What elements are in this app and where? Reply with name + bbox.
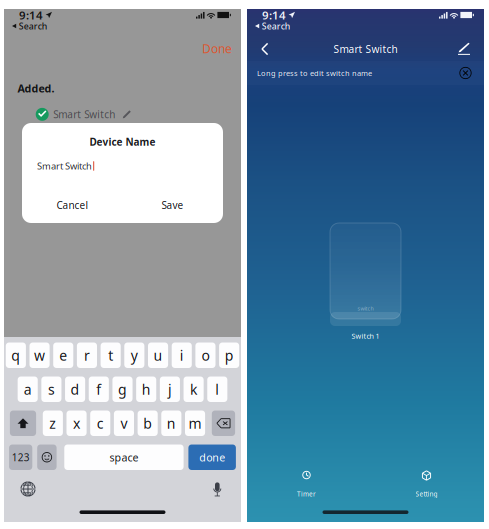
- button[interactable]: p: [219, 342, 239, 368]
- staticText: 123: [12, 450, 30, 464]
- staticText: r: [84, 346, 90, 365]
- staticText: Setting: [415, 489, 437, 498]
- staticText: Device Name: [89, 135, 155, 149]
- staticText: Smart Switch: [53, 107, 115, 121]
- button[interactable]: Cancel: [22, 192, 122, 218]
- staticText: 9:14: [262, 7, 286, 23]
- button[interactable]: r: [77, 342, 97, 368]
- staticText: q: [11, 346, 20, 365]
- button[interactable]: z: [43, 410, 63, 436]
- button[interactable]: q: [6, 342, 26, 368]
- button[interactable]: n: [161, 410, 181, 436]
- staticText: Cancel: [56, 198, 88, 212]
- button[interactable]: x: [66, 410, 87, 436]
- button[interactable]: o: [195, 342, 215, 368]
- staticText: a: [24, 380, 32, 399]
- button[interactable]: Change keyboard: [14, 476, 42, 502]
- button[interactable]: c: [90, 410, 110, 436]
- staticText: b: [143, 414, 152, 433]
- staticText: Smart Switch: [333, 42, 397, 56]
- button[interactable]: d: [65, 376, 85, 402]
- button[interactable]: y: [124, 342, 144, 368]
- staticText: Long press to edit switch name: [257, 68, 372, 78]
- staticText: Switch 1: [351, 331, 379, 341]
- staticText: f: [96, 380, 101, 399]
- staticText: space: [109, 450, 138, 464]
- button[interactable]: Save: [122, 192, 222, 218]
- button[interactable]: s: [41, 376, 61, 402]
- button[interactable]: m: [185, 410, 205, 436]
- staticText: y: [131, 346, 138, 365]
- staticText: i: [180, 346, 184, 365]
- button[interactable]: Dismiss: [456, 63, 475, 82]
- button[interactable]: done: [188, 444, 236, 470]
- staticText: l: [215, 380, 219, 399]
- button[interactable]: a: [18, 376, 38, 402]
- button[interactable]: space: [64, 444, 184, 470]
- staticText: v: [120, 414, 127, 433]
- staticText: m: [189, 414, 202, 433]
- staticText: s: [48, 380, 55, 399]
- button[interactable]: Back: [253, 38, 277, 60]
- staticText: done: [199, 450, 225, 464]
- staticText: h: [142, 380, 151, 399]
- staticText: n: [167, 414, 176, 433]
- button[interactable]: Emoji: [37, 444, 57, 470]
- button[interactable]: Edit: [450, 38, 478, 60]
- staticText: Search: [19, 20, 48, 32]
- button[interactable]: Done: [193, 35, 241, 62]
- button[interactable]: Shift: [10, 410, 36, 436]
- button[interactable]: k: [184, 376, 204, 402]
- staticText: u: [154, 346, 163, 365]
- button[interactable]: e: [53, 342, 73, 368]
- button[interactable]: g: [112, 376, 133, 402]
- staticText: Search: [262, 20, 291, 32]
- button[interactable]: b: [138, 410, 158, 436]
- staticText: switch: [357, 305, 373, 312]
- staticText: w: [34, 346, 45, 365]
- staticText: x: [73, 414, 80, 433]
- button[interactable]: j: [160, 376, 180, 402]
- button[interactable]: Setting: [401, 469, 451, 499]
- button[interactable]: 123: [9, 444, 32, 470]
- staticText: g: [118, 380, 127, 399]
- staticText: 9:14: [19, 7, 43, 23]
- button[interactable]: u: [148, 342, 168, 368]
- staticText: k: [190, 380, 197, 399]
- button[interactable]: Delete: [212, 410, 235, 436]
- staticText: e: [59, 346, 67, 365]
- button[interactable]: t: [101, 342, 121, 368]
- button[interactable]: h: [136, 376, 156, 402]
- staticText: Smart Switch: [37, 160, 92, 172]
- staticText: o: [201, 346, 209, 365]
- staticText: j: [168, 380, 172, 399]
- staticText: Save: [161, 198, 183, 212]
- button[interactable]: Dictate: [204, 476, 231, 501]
- button[interactable]: i: [172, 342, 192, 368]
- staticText: d: [71, 380, 80, 399]
- staticText: Done: [202, 40, 232, 57]
- button[interactable]: v: [114, 410, 134, 436]
- button[interactable]: w: [29, 342, 50, 368]
- staticText: p: [225, 346, 234, 365]
- staticText: z: [49, 414, 56, 433]
- staticText: Timer: [297, 489, 316, 498]
- button[interactable]: f: [89, 376, 109, 402]
- staticText: Added.: [17, 81, 54, 95]
- staticText: t: [108, 346, 113, 365]
- button[interactable]: Timer: [281, 469, 331, 499]
- staticText: c: [97, 414, 104, 433]
- button[interactable]: l: [207, 376, 227, 402]
